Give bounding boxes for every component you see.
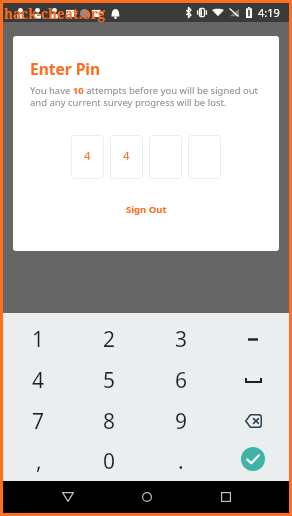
- button[interactable]: Sign Out: [30, 203, 262, 216]
- staticText: You have 10 attempts before you will be …: [30, 84, 262, 109]
- button[interactable]: 0: [74, 442, 145, 481]
- staticText: 9: [175, 407, 188, 436]
- staticText: 4: [32, 366, 45, 395]
- staticText: 4:19: [258, 5, 280, 20]
- button[interactable]: 9: [145, 401, 217, 442]
- button[interactable]: Dash: [217, 319, 289, 360]
- staticText: 4: [84, 148, 91, 164]
- button[interactable]: 7: [3, 401, 74, 442]
- other: Dash: [248, 338, 258, 341]
- other: Backspace: [245, 414, 262, 428]
- staticText: hack-cheat.org: [4, 5, 106, 23]
- button[interactable]: 4: [110, 135, 143, 179]
- button[interactable]: 8: [74, 401, 145, 442]
- button[interactable]: 4: [3, 360, 74, 401]
- staticText: 2: [103, 325, 116, 354]
- button[interactable]: .: [145, 442, 217, 481]
- button[interactable]: Recents: [186, 484, 265, 510]
- staticText: ,: [36, 447, 42, 476]
- button[interactable]: [149, 135, 182, 179]
- button[interactable]: 6: [145, 360, 217, 401]
- staticText: 0: [103, 447, 116, 476]
- button[interactable]: 5: [74, 360, 145, 401]
- staticText: 7: [32, 407, 45, 436]
- staticText: 1: [32, 325, 45, 354]
- button[interactable]: ,: [3, 442, 74, 481]
- other: Space: [245, 378, 262, 383]
- button[interactable]: Back: [28, 484, 107, 510]
- button[interactable]: 3: [145, 319, 217, 360]
- staticText: 5: [103, 366, 116, 395]
- button[interactable]: 2: [74, 319, 145, 360]
- button[interactable]: Confirm: [217, 442, 289, 481]
- button[interactable]: 4: [71, 135, 104, 179]
- button[interactable]: Confirm: [241, 447, 265, 471]
- staticText: 6: [175, 366, 188, 395]
- staticText: 8: [103, 407, 116, 436]
- button[interactable]: Home: [107, 484, 186, 510]
- staticText: Sign Out: [126, 203, 167, 216]
- staticText: Enter Pin: [30, 58, 101, 79]
- staticText: .: [178, 447, 184, 476]
- button[interactable]: Space: [217, 360, 289, 401]
- button[interactable]: 1: [3, 319, 74, 360]
- staticText: 3: [175, 325, 188, 354]
- button[interactable]: [188, 135, 221, 179]
- staticText: 4: [123, 148, 130, 164]
- button[interactable]: Backspace: [217, 401, 289, 442]
